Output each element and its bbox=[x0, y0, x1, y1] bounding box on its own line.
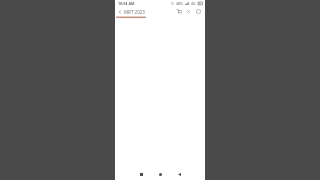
button[interactable]: Back bbox=[174, 169, 184, 179]
button[interactable]: Tabs bbox=[194, 7, 203, 16]
staticText: 48% bbox=[176, 1, 183, 5]
staticText: MRT 2023 bbox=[124, 9, 145, 15]
button[interactable]: Recent apps bbox=[136, 169, 146, 179]
button[interactable]: Back bbox=[116, 8, 124, 16]
button[interactable]: Home bbox=[155, 169, 165, 179]
button[interactable]: MRT 2023 bbox=[124, 9, 145, 15]
staticText: 10:54 AM bbox=[118, 1, 135, 6]
button[interactable]: Shopping cart bbox=[175, 7, 184, 16]
button[interactable]: Close bbox=[184, 7, 193, 16]
staticText: 4G bbox=[191, 1, 196, 5]
